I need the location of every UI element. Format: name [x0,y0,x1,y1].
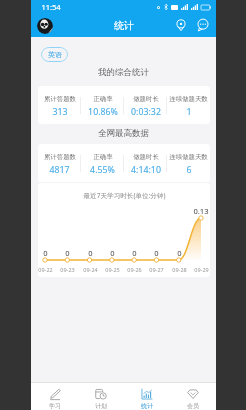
staticText: 做题时长 [133,153,159,161]
staticText: 09-29 [194,266,209,273]
staticText: 313 [52,106,68,118]
button[interactable]: 会员 [170,383,216,410]
button[interactable]: 学习 [31,383,78,410]
staticText: 会员 [187,402,199,410]
staticText: 0 [132,248,137,258]
staticText: 09-22 [38,266,53,273]
staticText: 0 [177,248,182,258]
staticText: 1 [186,106,192,118]
staticText: 累计答题数 [44,95,76,103]
staticText: 我的综合统计 [98,67,149,78]
staticText: 4817 [49,164,70,176]
staticText: 0 [43,248,48,258]
staticText: 09-24 [83,266,98,273]
staticText: 09-23 [60,266,75,273]
staticText: 0:03:32 [131,106,161,118]
staticText: 连续做题天数 [169,95,208,103]
staticText: 4.55% [90,164,115,176]
staticText: 09-25 [105,266,120,273]
button[interactable]: Profile [37,18,53,34]
staticText: 11:54 [41,2,61,12]
button[interactable]: Messages [196,18,210,32]
staticText: 10.86% [88,106,118,118]
button[interactable]: 计划 [78,383,124,410]
staticText: 09-28 [172,266,187,273]
button[interactable]: Location [174,18,188,32]
staticText: 0.13 [193,206,209,216]
staticText: 统计 [141,402,153,410]
staticText: 0 [110,248,115,258]
staticText: 累计答题数 [44,153,76,161]
staticText: 6 [186,164,192,176]
button[interactable]: 统计 [124,383,170,410]
staticText: 09-27 [149,266,164,273]
staticText: 0 [88,248,93,258]
staticText: 09-26 [127,266,142,273]
staticText: 做题时长 [133,95,159,103]
staticText: 全网最高数据 [98,128,149,139]
staticText: 英语 [48,50,62,59]
staticText: 0 [154,248,159,258]
staticText: 计划 [95,402,107,410]
staticText: 0 [65,248,70,258]
button[interactable]: 英语 [41,47,68,62]
staticText: 统计 [114,19,134,32]
staticText: 学习 [49,402,61,410]
staticText: 正确率 [93,153,113,161]
staticText: 最近7天学习时长(单位:分钟) [83,191,166,200]
staticText: 4:14:10 [131,164,161,176]
staticText: 连续做题天数 [169,153,208,161]
staticText: 正确率 [93,95,113,103]
